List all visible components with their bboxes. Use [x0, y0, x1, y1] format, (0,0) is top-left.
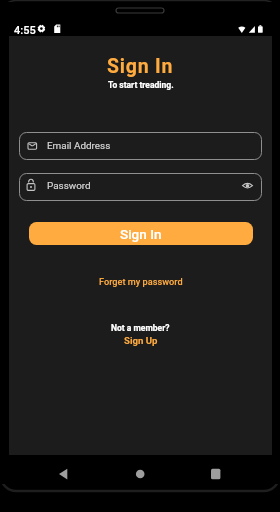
button[interactable] [187, 460, 280, 486]
button[interactable]: Sign Up [124, 334, 158, 347]
button[interactable] [0, 460, 94, 486]
staticText: Password [47, 180, 91, 192]
staticText: Email Address [47, 140, 111, 152]
staticText: Forget my password [99, 276, 183, 287]
staticText: Sign In [120, 226, 162, 242]
staticText: Not a member? [111, 323, 170, 333]
staticText: 4:55 [14, 24, 36, 37]
button[interactable]: Password [19, 173, 262, 201]
staticText: To start treading. [108, 80, 174, 90]
staticText: Sign Up [124, 335, 158, 346]
button[interactable]: Forget my password [99, 275, 183, 287]
button[interactable] [94, 460, 187, 486]
button[interactable]: Email Address [19, 132, 262, 160]
button[interactable]: Sign In [29, 222, 253, 245]
staticText: Sign In [107, 55, 174, 78]
